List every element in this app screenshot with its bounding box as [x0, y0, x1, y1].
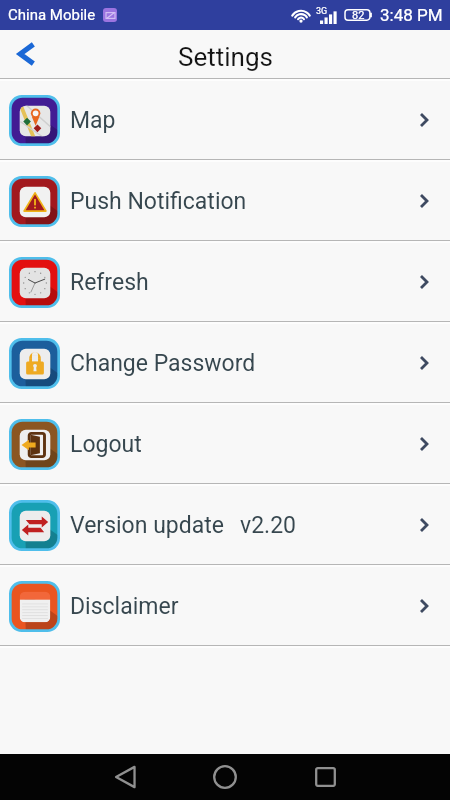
staticText: v2.20: [240, 512, 296, 539]
staticText: 3G: [316, 6, 328, 17]
staticText: Change Password: [70, 350, 256, 377]
button[interactable]: Back: [0, 30, 52, 78]
button[interactable]: Map: [0, 81, 450, 159]
button[interactable]: Logout: [0, 405, 450, 483]
button[interactable]: Refresh: [0, 243, 450, 321]
button[interactable]: Push Notification: [0, 162, 450, 240]
staticText: Settings: [178, 42, 273, 72]
staticText: Refresh: [70, 269, 149, 296]
staticText: 82: [352, 9, 365, 22]
staticText: 3:48 PM: [380, 5, 443, 25]
staticText: Push Notification: [70, 188, 247, 215]
staticText: Logout: [70, 431, 142, 458]
button[interactable]: Disclaimer: [0, 567, 450, 645]
button[interactable]: Recents: [302, 754, 348, 800]
button[interactable]: Change Password: [0, 324, 450, 402]
staticText: Version update: [70, 512, 224, 539]
button[interactable]: Home: [202, 754, 248, 800]
staticText: Disclaimer: [70, 593, 179, 620]
staticText: China Mobile: [8, 6, 96, 24]
staticText: Map: [70, 107, 116, 134]
button[interactable]: Back: [102, 754, 148, 800]
button[interactable]: Version update: [0, 486, 450, 564]
